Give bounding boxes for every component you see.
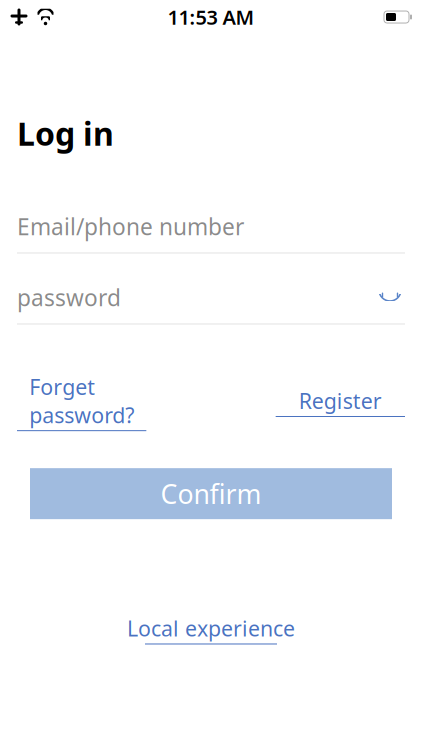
staticText: Local experience xyxy=(127,614,295,642)
staticText: Log in xyxy=(17,112,114,154)
button[interactable]: Show password xyxy=(375,285,405,309)
staticText: Forget password? xyxy=(29,372,134,429)
staticText: Email/phone number xyxy=(17,211,244,241)
staticText: password xyxy=(17,282,121,312)
staticText: Confirm xyxy=(160,476,261,511)
button[interactable]: Register xyxy=(276,387,405,417)
button[interactable]: Local experience xyxy=(127,614,295,644)
staticText: 11:53 AM xyxy=(167,4,254,30)
button[interactable]: Forget password? xyxy=(17,372,146,431)
staticText: Register xyxy=(299,387,382,415)
button[interactable]: Confirm xyxy=(30,468,392,519)
